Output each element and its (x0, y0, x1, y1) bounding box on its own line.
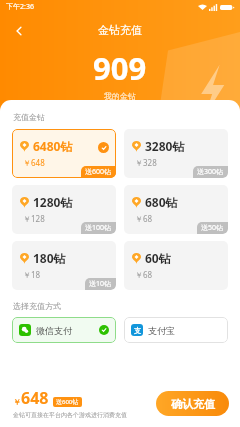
staticText: 支 (134, 326, 141, 335)
button[interactable]: 6480钻 (12, 129, 116, 178)
staticText: 648 (21, 387, 49, 409)
staticText: ￥ (13, 397, 21, 407)
staticText: 充值金钻 (13, 112, 45, 122)
staticText: ￥68 (135, 213, 153, 224)
staticText: 支付宝 (148, 325, 175, 336)
staticText: 送50钻 (201, 223, 224, 233)
staticText: 微信支付 (36, 325, 72, 336)
staticText: 180钻 (33, 250, 66, 266)
staticText: 6480钻 (33, 138, 73, 154)
button[interactable]: 180钻 (12, 241, 116, 290)
staticText: 1280钻 (33, 194, 73, 210)
staticText: 680钻 (145, 194, 178, 210)
button[interactable]: 680钻 (124, 185, 228, 234)
button[interactable]: 60钻 (124, 241, 228, 290)
staticText: 60钻 (145, 250, 171, 266)
button[interactable]: Back (9, 21, 29, 41)
staticText: 送100钻 (85, 223, 112, 233)
staticText: ￥128 (23, 213, 45, 224)
button[interactable]: 微信支付 (12, 317, 116, 343)
staticText: 金钻充值 (0, 23, 240, 37)
staticText: 送600钻 (56, 398, 79, 406)
staticText: 3280钻 (145, 138, 185, 154)
staticText: ￥18 (23, 269, 41, 280)
staticText: 我的金钻 (104, 91, 136, 101)
staticText: ￥648 (23, 157, 45, 168)
staticText: ￥328 (135, 157, 157, 168)
staticText: 送300钻 (197, 167, 224, 177)
staticText: 送10钻 (89, 279, 112, 289)
staticText: ￥68 (135, 269, 153, 280)
staticText: 选择充值方式 (13, 301, 61, 311)
staticText: 送600钻 (85, 167, 112, 177)
staticText: 909 (93, 47, 147, 89)
button[interactable]: 支 (124, 317, 228, 343)
staticText: 下午2:36 (6, 2, 34, 12)
staticText: 金钻可直接在平台内各个游戏进行消费充值 (13, 411, 127, 419)
button[interactable]: 3280钻 (124, 129, 228, 178)
button[interactable]: 确认充值 (156, 391, 229, 416)
button[interactable]: 1280钻 (12, 185, 116, 234)
staticText: 确认充值 (171, 397, 215, 411)
